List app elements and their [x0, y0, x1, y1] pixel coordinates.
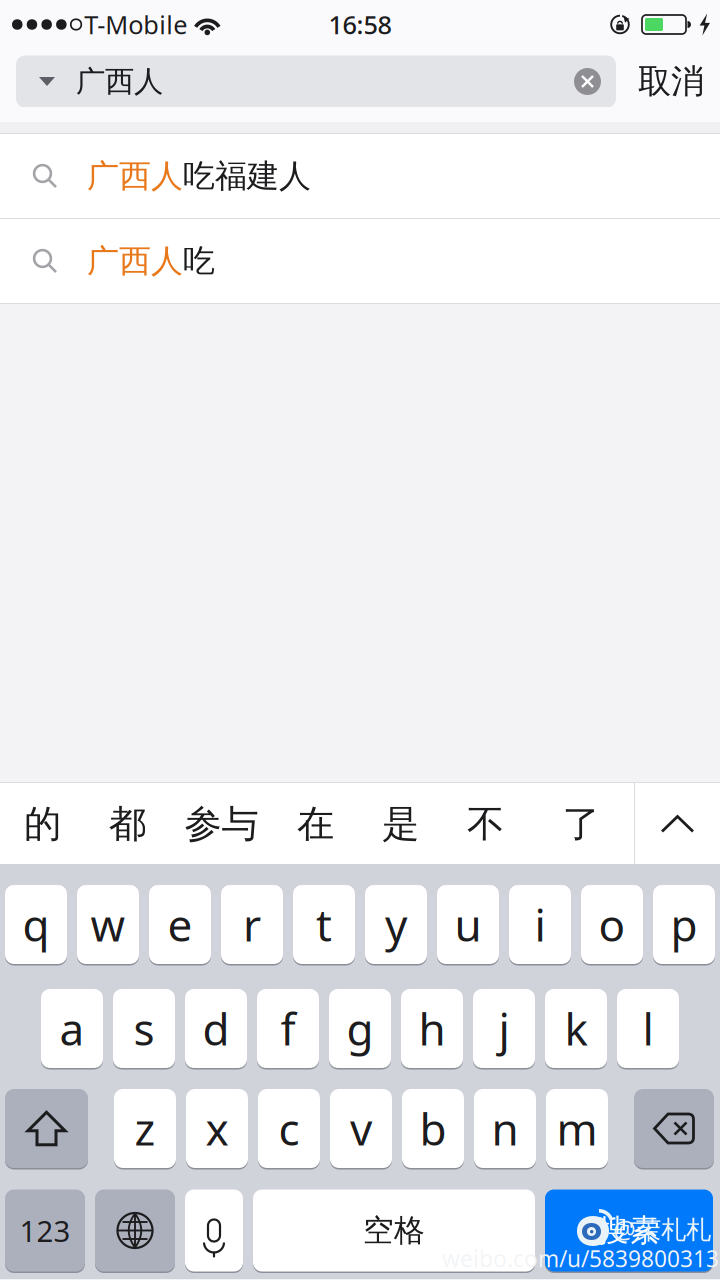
button[interactable]: i: [509, 885, 571, 965]
button[interactable]: k: [545, 989, 607, 1069]
staticText: t: [316, 895, 332, 954]
staticText: u: [454, 895, 481, 954]
button[interactable]: n: [474, 1089, 536, 1169]
button[interactable]: m: [546, 1089, 608, 1169]
staticText: f: [280, 999, 295, 1058]
staticText: c: [278, 1099, 299, 1158]
button[interactable]: Switch keyboard: [95, 1189, 175, 1273]
button[interactable]: j: [473, 989, 535, 1069]
button[interactable]: 广西人: [16, 48, 616, 107]
button[interactable]: 空格: [253, 1189, 535, 1273]
staticText: i: [534, 895, 545, 954]
button[interactable]: f: [257, 989, 319, 1069]
staticText: 都: [109, 801, 146, 847]
staticText: m: [556, 1099, 597, 1158]
staticText: n: [491, 1099, 518, 1158]
button[interactable]: e: [149, 885, 211, 965]
button[interactable]: 的: [0, 783, 85, 865]
button[interactable]: b: [402, 1089, 464, 1169]
button[interactable]: w: [77, 885, 139, 965]
staticText: d: [202, 999, 229, 1058]
button[interactable]: p: [653, 885, 715, 965]
button[interactable]: 搜索: [545, 1189, 713, 1273]
staticText: v: [350, 1099, 372, 1158]
staticText: T-Mobile: [84, 8, 187, 41]
staticText: b: [419, 1099, 446, 1158]
button[interactable]: l: [617, 989, 679, 1069]
staticText: 广西人: [76, 63, 163, 99]
button[interactable]: Shift: [5, 1089, 88, 1169]
button[interactable]: q: [5, 885, 67, 965]
staticText: l: [642, 999, 653, 1058]
staticText: 不: [467, 801, 504, 847]
staticText: h: [418, 999, 445, 1058]
button[interactable]: u: [437, 885, 499, 965]
staticText: o: [598, 895, 625, 954]
button[interactable]: x: [186, 1089, 248, 1169]
staticText: j: [498, 999, 509, 1058]
button[interactable]: z: [114, 1089, 176, 1169]
staticText: 的: [24, 801, 61, 847]
staticText: z: [134, 1099, 155, 1158]
button[interactable]: y: [365, 885, 427, 965]
button[interactable]: d: [185, 989, 247, 1069]
staticText: a: [59, 999, 84, 1058]
staticText: w: [90, 895, 125, 954]
staticText: 在: [297, 801, 334, 847]
button[interactable]: Expand candidates: [635, 783, 720, 865]
staticText: 参与: [184, 801, 258, 847]
button[interactable]: t: [293, 885, 355, 965]
button[interactable]: a: [41, 989, 103, 1069]
button[interactable]: v: [330, 1089, 392, 1169]
button[interactable]: 取消: [616, 48, 720, 107]
button[interactable]: 了: [528, 783, 634, 865]
staticText: 搜索: [598, 1212, 660, 1249]
button[interactable]: 不: [443, 783, 528, 865]
button[interactable]: Dictate: [185, 1189, 243, 1273]
staticText: 是: [382, 801, 419, 847]
button[interactable]: 广西人: [0, 219, 720, 303]
staticText: @茉札札: [613, 1212, 711, 1246]
staticText: 吃福建人: [183, 156, 311, 196]
button[interactable]: h: [401, 989, 463, 1069]
staticText: 广西人: [87, 241, 183, 281]
button[interactable]: Delete: [634, 1089, 714, 1169]
staticText: r: [243, 895, 261, 954]
staticText: e: [167, 895, 192, 954]
staticText: 了: [562, 801, 599, 847]
staticText: 广西人: [87, 156, 183, 196]
button[interactable]: 在: [273, 783, 358, 865]
button[interactable]: r: [221, 885, 283, 965]
staticText: 吃: [183, 241, 215, 281]
button[interactable]: 都: [85, 783, 170, 865]
button[interactable]: s: [113, 989, 175, 1069]
staticText: k: [564, 999, 587, 1058]
staticText: q: [22, 895, 49, 954]
button[interactable]: 广西人: [0, 134, 720, 218]
button[interactable]: g: [329, 989, 391, 1069]
staticText: 123: [19, 1211, 70, 1250]
staticText: 空格: [363, 1212, 425, 1249]
button[interactable]: o: [581, 885, 643, 965]
staticText: p: [670, 895, 697, 954]
staticText: g: [346, 999, 373, 1058]
button[interactable]: c: [258, 1089, 320, 1169]
staticText: 16:58: [328, 8, 391, 41]
staticText: weibo.com/u/5839800313: [442, 1243, 719, 1273]
staticText: s: [133, 999, 154, 1058]
staticText: y: [385, 895, 407, 954]
staticText: x: [205, 1099, 228, 1158]
button[interactable]: 参与: [170, 783, 273, 865]
button[interactable]: 123: [5, 1189, 85, 1273]
staticText: 取消: [638, 61, 704, 102]
button[interactable]: 是: [358, 783, 443, 865]
